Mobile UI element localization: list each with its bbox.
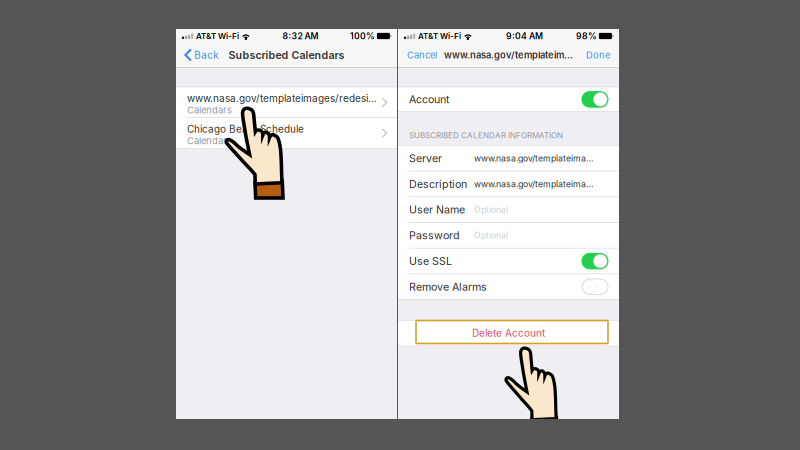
button[interactable]: Back <box>176 43 225 67</box>
staticText: 8:32 AM <box>282 31 318 41</box>
staticText: Server <box>409 152 442 165</box>
button[interactable]: Chicago Bears Schedule <box>176 118 397 148</box>
staticText: Chicago Bears Schedule <box>187 123 304 135</box>
button[interactable]: Cancel <box>398 43 446 67</box>
staticText: User Name <box>409 203 465 216</box>
staticText: 98% <box>576 31 597 41</box>
staticText: Optional <box>474 204 508 215</box>
staticText: Account <box>409 93 449 106</box>
staticText: Cancel <box>407 49 437 61</box>
staticText: 100% <box>350 31 375 41</box>
staticText: Delete Account <box>472 327 545 339</box>
button[interactable]: Use SSL <box>398 249 619 274</box>
button[interactable]: Account <box>398 87 619 111</box>
staticText: SUBSCRIBED CALENDAR INFORMATION <box>409 130 563 140</box>
staticText: 9:04 AM <box>506 31 543 41</box>
staticText: Use SSL <box>409 255 452 267</box>
staticText: Back <box>194 49 218 61</box>
button[interactable]: Remove Alarms <box>398 274 619 299</box>
staticText: www.nasa.gov/templateimages/rede... <box>474 179 594 189</box>
staticText: Optional <box>474 230 508 241</box>
staticText: Remove Alarms <box>409 280 487 293</box>
staticText: Calendars <box>187 135 232 146</box>
staticText: Password <box>409 229 460 242</box>
staticText: Done <box>586 49 610 61</box>
staticText: www.nasa.gov/templateim... <box>444 49 573 61</box>
staticText: Subscribed Calendars <box>228 48 344 61</box>
staticText: Calendars <box>187 104 232 116</box>
staticText: Description <box>409 177 467 190</box>
button[interactable]: www.nasa.gov/templateimages/redesign... <box>176 87 397 117</box>
staticText: AT&T Wi-Fi <box>416 31 463 41</box>
button[interactable]: Done <box>577 43 619 67</box>
staticText: www.nasa.gov/templateimages/redesign... <box>187 92 381 104</box>
staticText: AT&T Wi-Fi <box>194 31 241 41</box>
staticText: www.nasa.gov/templateimages/rede... <box>474 153 594 164</box>
button[interactable]: Delete Account <box>398 321 619 346</box>
